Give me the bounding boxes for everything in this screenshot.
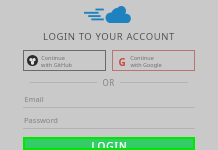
staticText: G	[118, 55, 126, 66]
staticText: Continue	[130, 54, 154, 61]
staticText: LOGIN	[91, 139, 128, 148]
button[interactable]: Password	[23, 115, 195, 129]
staticText: OR	[102, 77, 115, 88]
staticText: Continue	[41, 54, 65, 61]
button[interactable]: Continue	[23, 50, 106, 71]
staticText: with Google	[130, 61, 162, 68]
button[interactable]: G	[112, 50, 195, 71]
staticText: Email	[24, 94, 44, 104]
button[interactable]: LOGIN	[25, 139, 193, 148]
button[interactable]: Email	[23, 94, 195, 108]
staticText: LOGIN TO YOUR ACCOUNT	[43, 30, 175, 43]
staticText: Password	[24, 115, 58, 125]
staticText: with GitHub	[41, 61, 72, 68]
